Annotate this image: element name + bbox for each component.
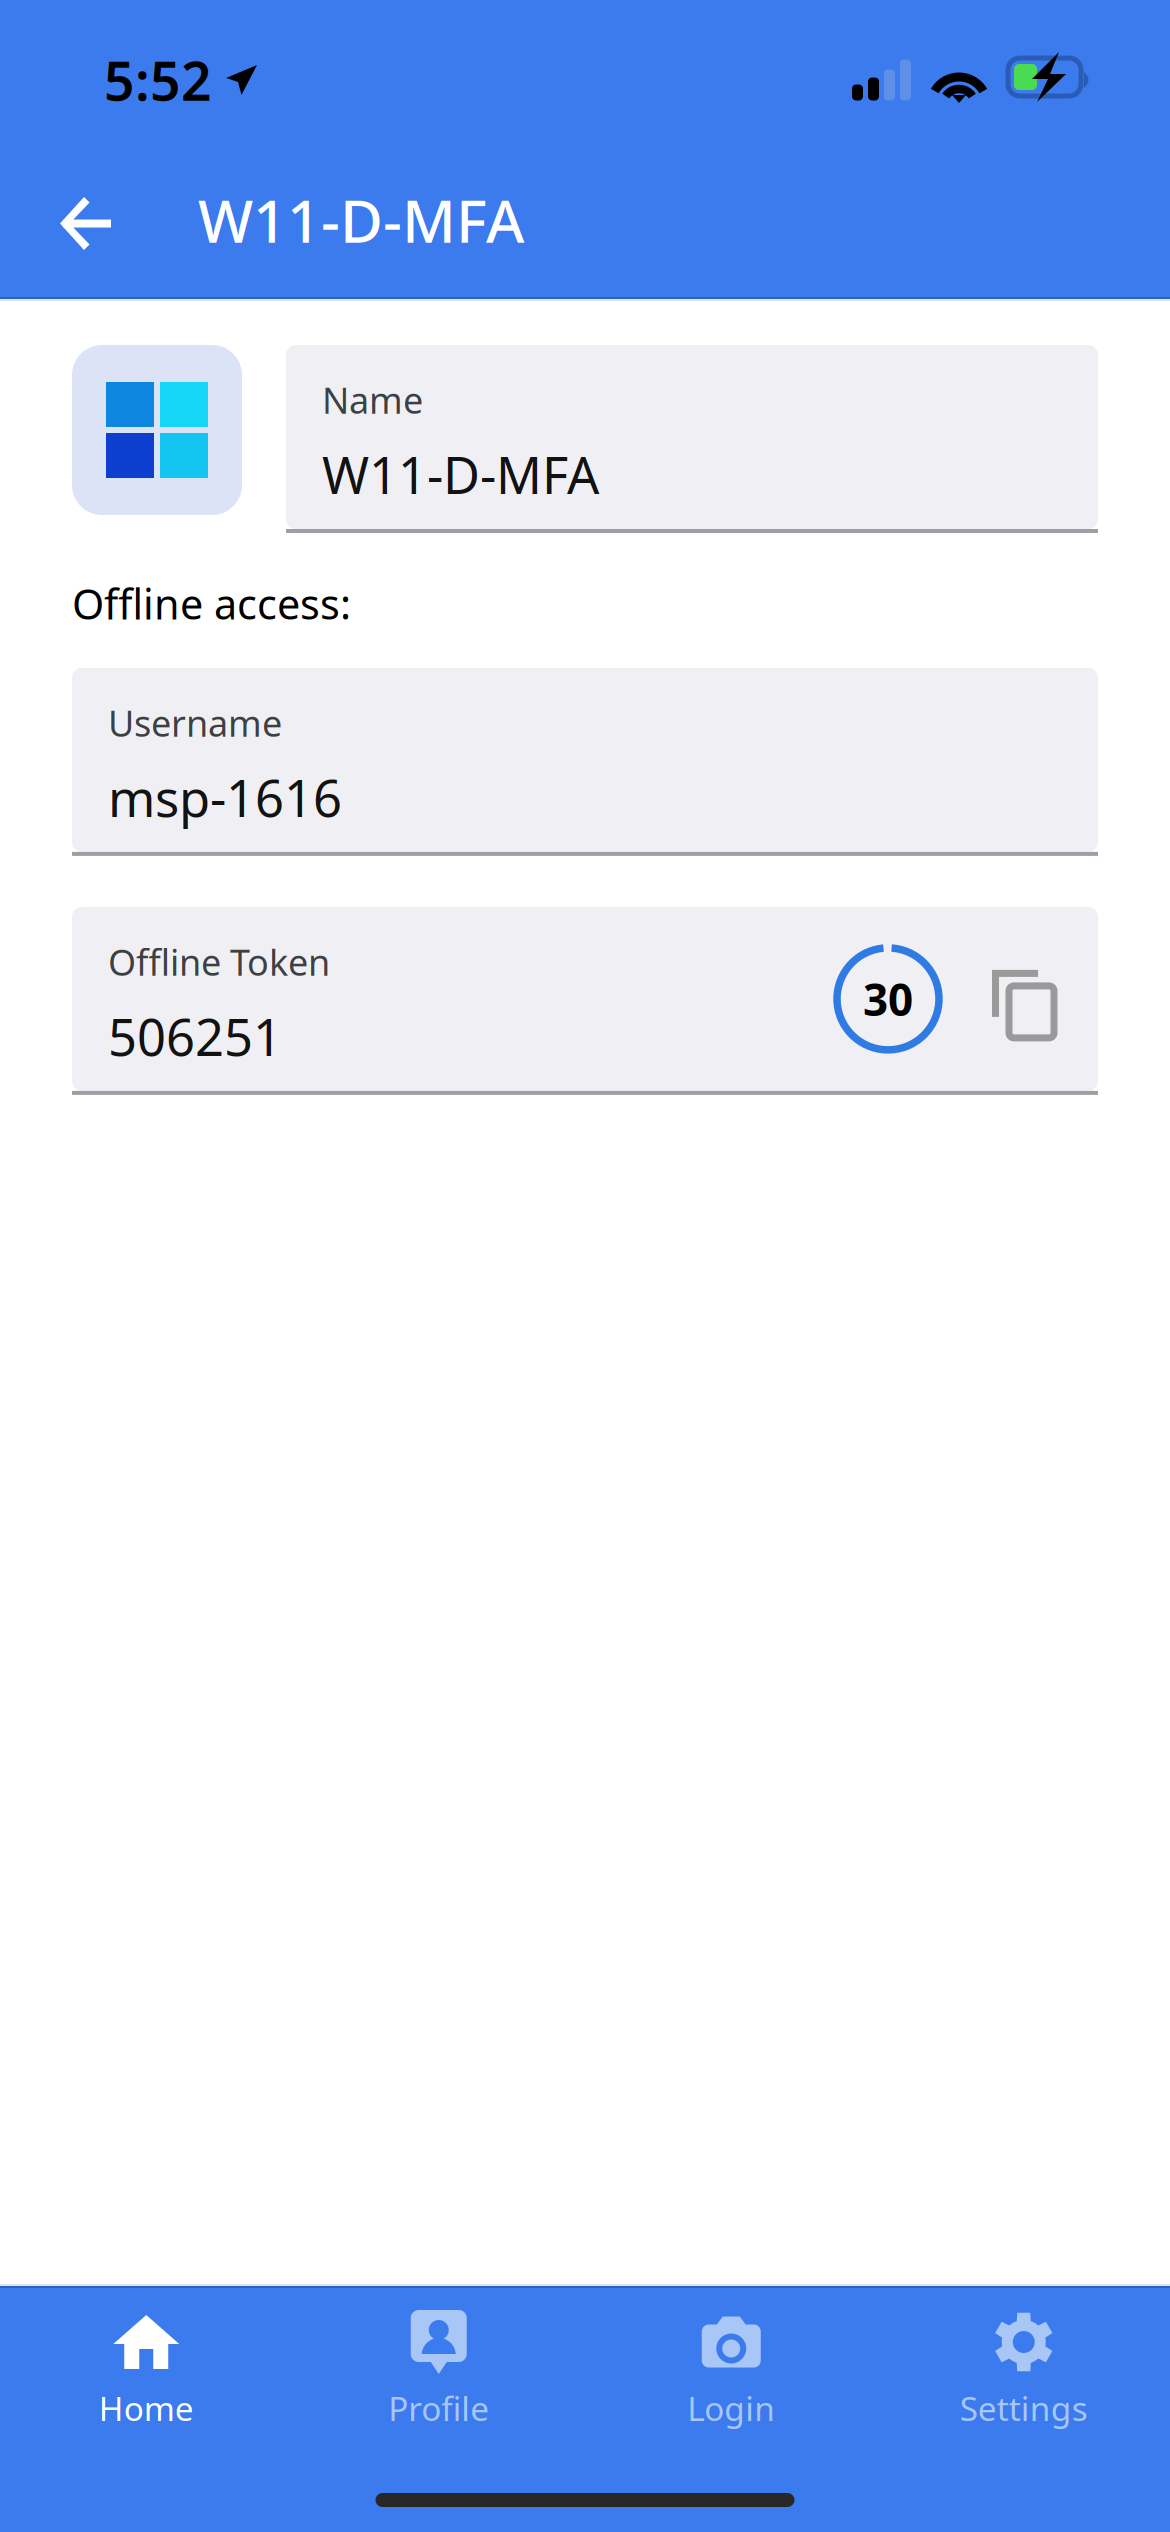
staticText: W11-D-MFA [322, 441, 599, 508]
staticText: Home [99, 2386, 194, 2430]
staticText: Offline Token [108, 938, 330, 986]
staticText: Name [322, 376, 423, 424]
button[interactable]: Home [0, 2288, 292, 2446]
staticText: Offline access: [72, 576, 351, 631]
staticText: 5:52 [104, 45, 212, 115]
button[interactable]: Copy token [992, 960, 1054, 1038]
staticText: Username [108, 699, 282, 747]
button[interactable]: Settings [877, 2288, 1170, 2446]
button[interactable]: Login [585, 2288, 877, 2446]
staticText: Login [687, 2386, 775, 2430]
staticText: Settings [960, 2386, 1088, 2430]
staticText: msp-1616 [108, 764, 342, 831]
button[interactable]: Profile [292, 2288, 585, 2446]
staticText: 506251 [108, 1003, 282, 1070]
staticText: 30 [863, 970, 913, 1028]
staticText: Profile [388, 2386, 489, 2430]
staticText: W11-D-MFA [198, 181, 524, 259]
button[interactable]: Back [0, 157, 148, 290]
